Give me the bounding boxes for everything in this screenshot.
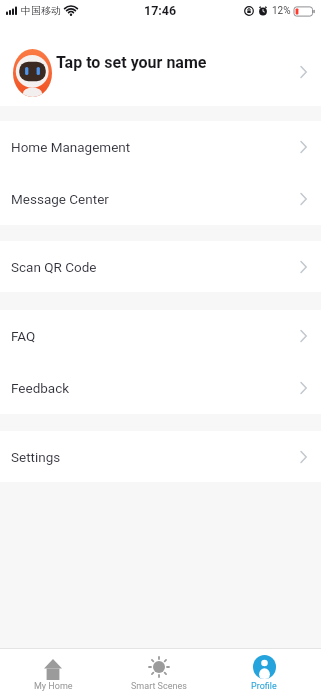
staticText: Settings bbox=[11, 449, 300, 465]
staticText: Profile bbox=[251, 681, 277, 692]
button[interactable]: Scan QR Code bbox=[0, 241, 321, 292]
button[interactable]: My Home bbox=[0, 649, 106, 696]
staticText: My Home bbox=[34, 681, 73, 692]
button[interactable]: Profile bbox=[211, 649, 316, 696]
staticText: Home Management bbox=[11, 139, 300, 155]
button[interactable]: FAQ bbox=[0, 310, 321, 362]
staticText: FAQ bbox=[11, 328, 300, 344]
staticText: 中国移动 bbox=[21, 4, 61, 17]
staticText: Scan QR Code bbox=[11, 259, 300, 275]
button[interactable]: Tap to set your name bbox=[0, 25, 321, 106]
staticText: Smart Scenes bbox=[131, 681, 187, 692]
button[interactable]: Home Management bbox=[0, 121, 321, 173]
staticText: 12% bbox=[272, 5, 291, 17]
staticText: Feedback bbox=[11, 380, 300, 396]
button[interactable]: Settings bbox=[0, 431, 321, 482]
staticText: 17:46 bbox=[144, 3, 177, 18]
button[interactable]: Message Center bbox=[0, 173, 321, 225]
button[interactable]: Smart Scenes bbox=[106, 649, 211, 696]
staticText: Message Center bbox=[11, 191, 300, 207]
button[interactable]: Feedback bbox=[0, 362, 321, 414]
staticText: Tap to set your name bbox=[56, 53, 207, 72]
